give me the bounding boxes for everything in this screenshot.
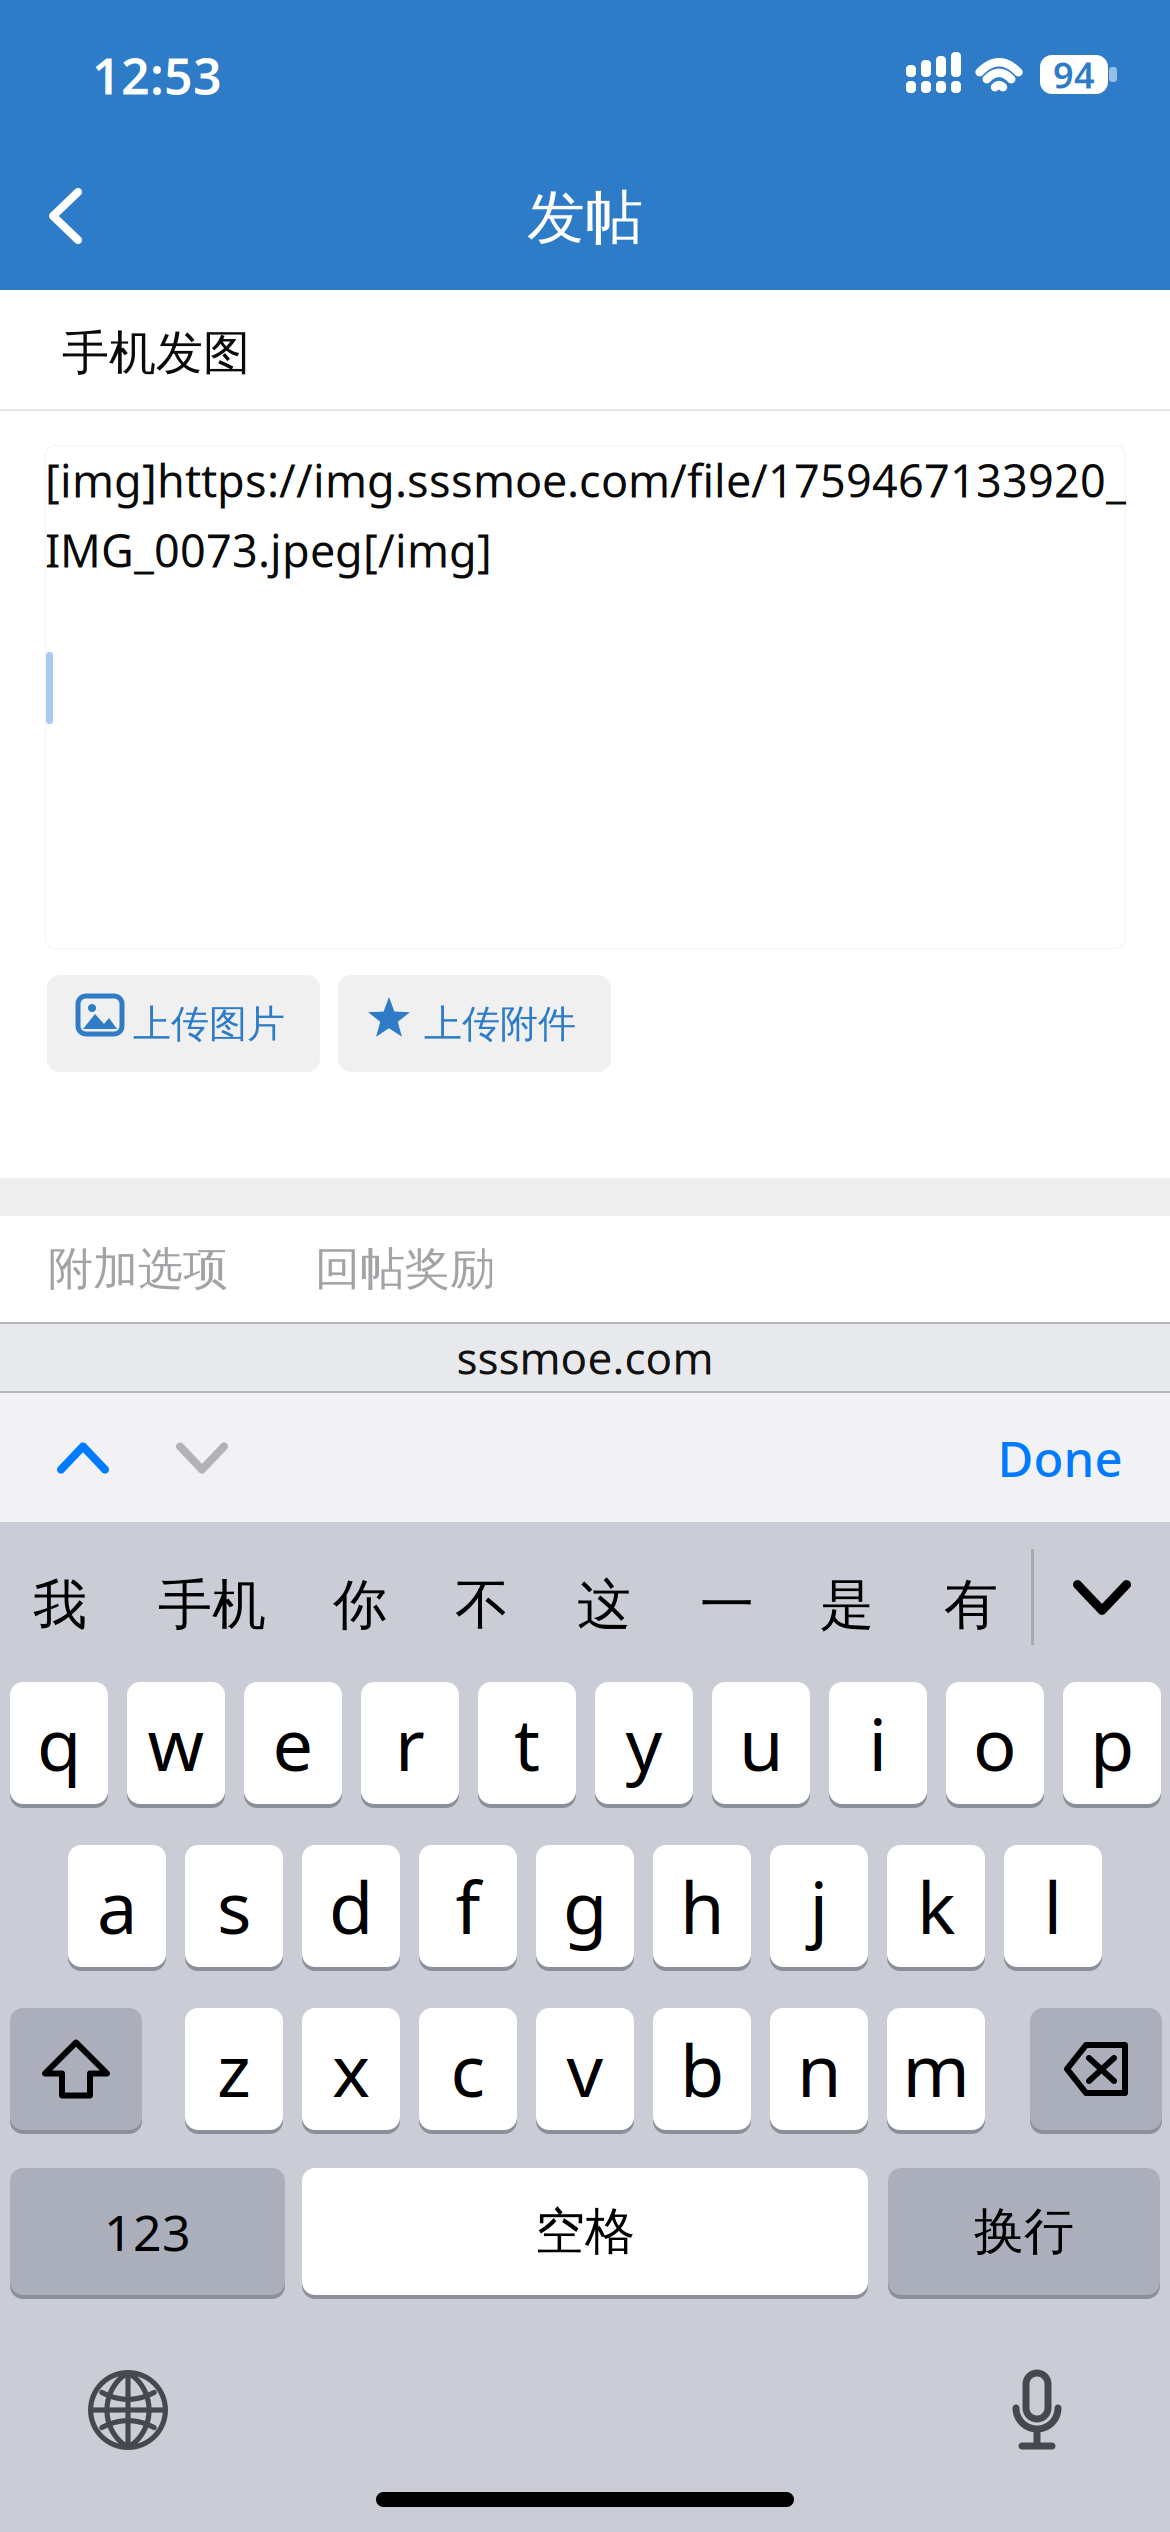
button[interactable]: c (419, 2008, 517, 2134)
button[interactable]: g (536, 1845, 634, 1971)
staticText: 12:53 (92, 41, 222, 109)
staticText: t (514, 1694, 540, 1792)
button[interactable]: x (302, 2008, 400, 2134)
staticText: 这 (577, 1571, 631, 1639)
button[interactable]: 有 (944, 1555, 1094, 1655)
button[interactable]: m (887, 2008, 985, 2134)
staticText: a (97, 1857, 137, 1955)
staticText: l (1043, 1857, 1062, 1955)
staticText: i (868, 1694, 887, 1792)
button[interactable]: 空格 (302, 2168, 868, 2299)
staticText: 上传图片 (133, 1000, 285, 1048)
staticText: q (37, 1694, 81, 1792)
staticText: x (332, 2020, 370, 2118)
button[interactable]: o (946, 1682, 1044, 1808)
staticText: 换行 (974, 2200, 1074, 2263)
button[interactable]: 换行 (888, 2168, 1160, 2299)
staticText: [img]https://img.sssmoe.com/file/1759467… (45, 449, 1126, 511)
staticText: sssmoe.com (456, 1327, 713, 1387)
button[interactable]: v (536, 2008, 634, 2134)
staticText: 附加选项 (48, 1241, 228, 1297)
staticText: 有 (944, 1571, 998, 1639)
button[interactable]: 一 (700, 1555, 850, 1655)
button[interactable]: i (829, 1682, 927, 1808)
staticText: n (797, 2020, 841, 2118)
button[interactable]: 附加选项 (48, 1216, 278, 1322)
button[interactable]: k (887, 1845, 985, 1971)
button[interactable]: 上传图片 (47, 975, 320, 1072)
button[interactable]: h (653, 1845, 751, 1971)
staticText: 发帖 (527, 181, 643, 255)
staticText: 我 (33, 1571, 87, 1639)
staticText: p (1090, 1694, 1134, 1792)
staticText: 123 (104, 2197, 191, 2265)
staticText: d (329, 1857, 373, 1955)
button[interactable]: z (185, 2008, 283, 2134)
button[interactable]: 123 (10, 2168, 285, 2299)
staticText: Done (997, 1425, 1122, 1491)
button[interactable]: 你 (333, 1555, 483, 1655)
staticText: b (680, 2020, 724, 2118)
button[interactable]: Done (960, 1403, 1160, 1513)
button[interactable]: p (1063, 1682, 1161, 1808)
staticText: k (917, 1857, 955, 1955)
button[interactable]: Previous field (28, 1403, 138, 1513)
button[interactable]: Back (23, 154, 147, 278)
staticText: 回帖奖励 (315, 1241, 495, 1297)
staticText: 上传附件 (424, 1000, 576, 1048)
staticText: r (395, 1694, 425, 1792)
staticText: h (680, 1857, 724, 1955)
button[interactable]: t (478, 1682, 576, 1808)
staticText: u (739, 1694, 783, 1792)
staticText: c (450, 2020, 485, 2118)
button[interactable]: Show more candidates (1073, 1580, 1131, 1615)
button[interactable]: 回帖奖励 (315, 1216, 545, 1322)
button[interactable]: Dictate (1012, 2368, 1062, 2452)
button[interactable]: Next field (147, 1403, 257, 1513)
button[interactable]: 上传附件 (338, 975, 611, 1072)
button[interactable]: j (770, 1845, 868, 1971)
button[interactable]: f (419, 1845, 517, 1971)
button[interactable]: Shift (10, 2008, 142, 2134)
button[interactable]: r (361, 1682, 459, 1808)
button[interactable]: n (770, 2008, 868, 2134)
button[interactable]: Delete (1030, 2008, 1162, 2134)
button[interactable]: b (653, 2008, 751, 2134)
staticText: g (563, 1857, 607, 1955)
button[interactable]: d (302, 1845, 400, 1971)
staticText: z (217, 2020, 251, 2118)
button[interactable]: 不 (455, 1555, 605, 1655)
button[interactable]: q (10, 1682, 108, 1808)
staticText: e (272, 1694, 313, 1792)
button[interactable]: 我 (33, 1555, 183, 1655)
staticText: 手机 (158, 1571, 266, 1639)
staticText: 是 (820, 1571, 874, 1639)
staticText: 94 (1053, 50, 1095, 99)
staticText: IMG_0073.jpeg[/img] (45, 519, 492, 581)
staticText: 空格 (535, 2200, 635, 2263)
button[interactable]: s (185, 1845, 283, 1971)
staticText: o (973, 1694, 1017, 1792)
staticText: 你 (333, 1571, 387, 1639)
button[interactable]: l (1004, 1845, 1102, 1971)
button[interactable]: 这 (577, 1555, 727, 1655)
button[interactable]: 是 (820, 1555, 970, 1655)
staticText: m (902, 2020, 969, 2118)
button[interactable]: y (595, 1682, 693, 1808)
button[interactable]: e (244, 1682, 342, 1808)
staticText: s (217, 1857, 251, 1955)
staticText: j (809, 1857, 828, 1955)
staticText: w (147, 1694, 204, 1792)
staticText: 不 (455, 1571, 509, 1639)
staticText: f (455, 1857, 480, 1955)
staticText: y (625, 1694, 662, 1792)
button[interactable]: 手机 (158, 1555, 308, 1655)
button[interactable]: w (127, 1682, 225, 1808)
button[interactable]: Switch keyboard (88, 2370, 168, 2450)
button[interactable]: a (68, 1845, 166, 1971)
staticText: 手机发图 (62, 323, 250, 383)
button[interactable]: u (712, 1682, 810, 1808)
staticText: v (566, 2020, 603, 2118)
staticText: 一 (700, 1571, 754, 1639)
